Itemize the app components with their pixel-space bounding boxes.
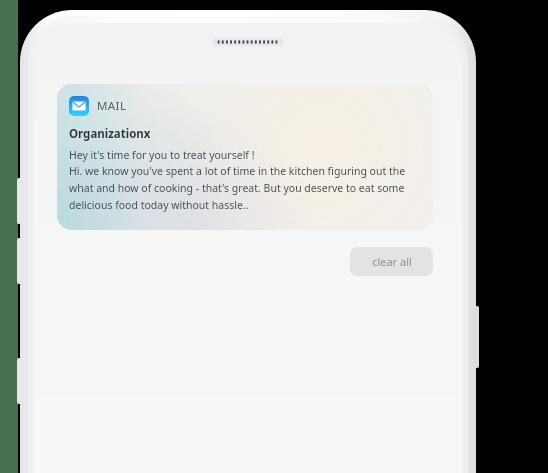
other: Volume down — [17, 238, 22, 284]
staticText: Hey it's time for you to treat yourself … — [69, 148, 255, 162]
other: Power button — [474, 306, 479, 368]
other: Volume up — [17, 178, 22, 224]
staticText: Organizationx — [69, 126, 151, 142]
button[interactable]: clear all — [350, 247, 433, 276]
button[interactable]: Mail app icon — [57, 84, 433, 230]
staticText: Hi. we know you've spent a lot of time i… — [69, 164, 421, 212]
other: Assistant button — [17, 358, 22, 404]
staticText: clear all — [372, 254, 412, 269]
other: Mail app icon — [69, 96, 89, 116]
staticText: MAIL — [97, 98, 127, 114]
